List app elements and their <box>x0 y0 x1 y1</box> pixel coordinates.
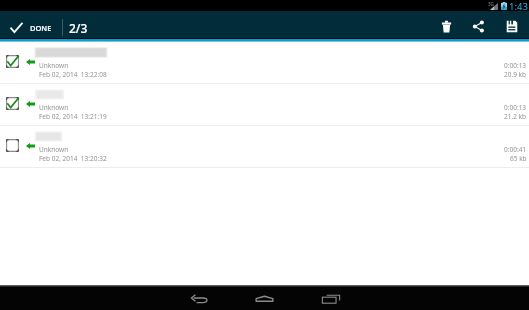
staticText: Unknown <box>39 145 69 154</box>
staticText: 65 kb <box>510 154 527 163</box>
button[interactable]: Unknown <box>0 42 529 84</box>
staticText: 0:00:41 <box>504 145 527 154</box>
button[interactable]: Share <box>464 11 492 38</box>
staticText: 20.9 kb <box>504 70 527 79</box>
staticText: Feb 02, 2014 13:20:32 <box>39 154 107 163</box>
staticText: 0:00:13 <box>504 61 527 70</box>
staticText: DONE <box>30 23 52 33</box>
button[interactable]: Back <box>180 285 218 309</box>
staticText: 1:43 <box>509 0 528 11</box>
button[interactable]: Delete <box>432 11 460 38</box>
button[interactable]: DONE <box>0 16 60 39</box>
staticText: 21.2 kb <box>504 112 527 121</box>
button[interactable]: Unknown <box>0 126 529 168</box>
button[interactable]: Unknown <box>0 84 529 126</box>
staticText: Feb 02, 2014 13:21:19 <box>39 112 107 121</box>
button[interactable]: Save <box>498 11 526 38</box>
button[interactable]: Recents <box>312 285 350 309</box>
staticText: Unknown <box>39 61 69 70</box>
staticText: 0:00:13 <box>504 103 527 112</box>
staticText: Unknown <box>39 103 69 112</box>
staticText: 3G <box>488 1 494 7</box>
staticText: 2/3 <box>69 20 88 36</box>
button[interactable]: Home <box>245 285 283 309</box>
staticText: Feb 02, 2014 13:22:08 <box>39 70 107 79</box>
